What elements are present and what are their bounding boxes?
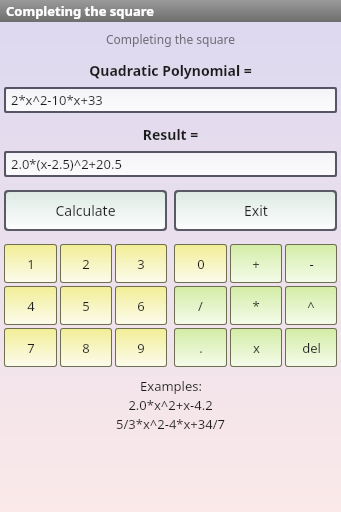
staticText: 4 — [27, 297, 35, 315]
staticText: 2.0*x^2+x-4.2 — [128, 396, 213, 414]
button[interactable]: 9 — [116, 329, 166, 366]
button[interactable]: Exit — [176, 192, 335, 229]
button[interactable]: . — [175, 329, 226, 366]
staticText: / — [198, 297, 203, 315]
staticText: Examples: — [140, 377, 202, 395]
staticText: Calculate — [55, 201, 116, 220]
staticText: 3 — [137, 255, 145, 273]
staticText: . — [199, 339, 203, 357]
button[interactable]: + — [231, 245, 281, 282]
staticText: 1 — [27, 255, 35, 273]
staticText: Completing the square — [0, 31, 341, 47]
button[interactable]: - — [286, 245, 336, 282]
button[interactable]: 0 — [175, 245, 226, 282]
button[interactable]: 6 — [116, 287, 166, 324]
button[interactable]: 4 — [5, 287, 56, 324]
staticText: Exit — [244, 201, 268, 220]
staticText: + — [252, 255, 260, 273]
staticText: 2.0*(x-2.5)^2+20.5 — [11, 155, 122, 173]
staticText: 9 — [137, 339, 145, 357]
staticText: * — [252, 297, 260, 315]
button[interactable]: 3 — [116, 245, 166, 282]
button[interactable]: / — [175, 287, 226, 324]
staticText: 6 — [137, 297, 145, 315]
button[interactable]: ^ — [286, 287, 336, 324]
button[interactable]: del — [286, 329, 336, 366]
staticText: - — [309, 255, 314, 273]
staticText: x — [253, 339, 260, 357]
button[interactable]: 2*x^2-10*x+33 — [6, 89, 335, 111]
staticText: 5 — [82, 297, 90, 315]
staticText: 8 — [82, 339, 90, 357]
staticText: 7 — [27, 339, 35, 357]
staticText: Completing the square — [6, 2, 155, 20]
staticText: Quadratic Polynomial = — [0, 61, 341, 80]
staticText: del — [302, 339, 321, 357]
button[interactable]: 5 — [61, 287, 111, 324]
button[interactable]: * — [231, 287, 281, 324]
button[interactable]: Calculate — [6, 192, 165, 229]
staticText: Result = — [0, 125, 341, 144]
button[interactable]: x — [231, 329, 281, 366]
staticText: 2*x^2-10*x+33 — [11, 91, 103, 109]
button[interactable]: 2 — [61, 245, 111, 282]
button[interactable]: Completing the square — [0, 0, 341, 22]
staticText: 2 — [82, 255, 90, 273]
staticText: ^ — [307, 297, 315, 315]
staticText: 0 — [197, 255, 205, 273]
button[interactable]: 8 — [61, 329, 111, 366]
button[interactable]: 7 — [5, 329, 56, 366]
button[interactable]: 1 — [5, 245, 56, 282]
button[interactable]: 2.0*(x-2.5)^2+20.5 — [6, 153, 335, 175]
staticText: 5/3*x^2-4*x+34/7 — [116, 415, 225, 433]
